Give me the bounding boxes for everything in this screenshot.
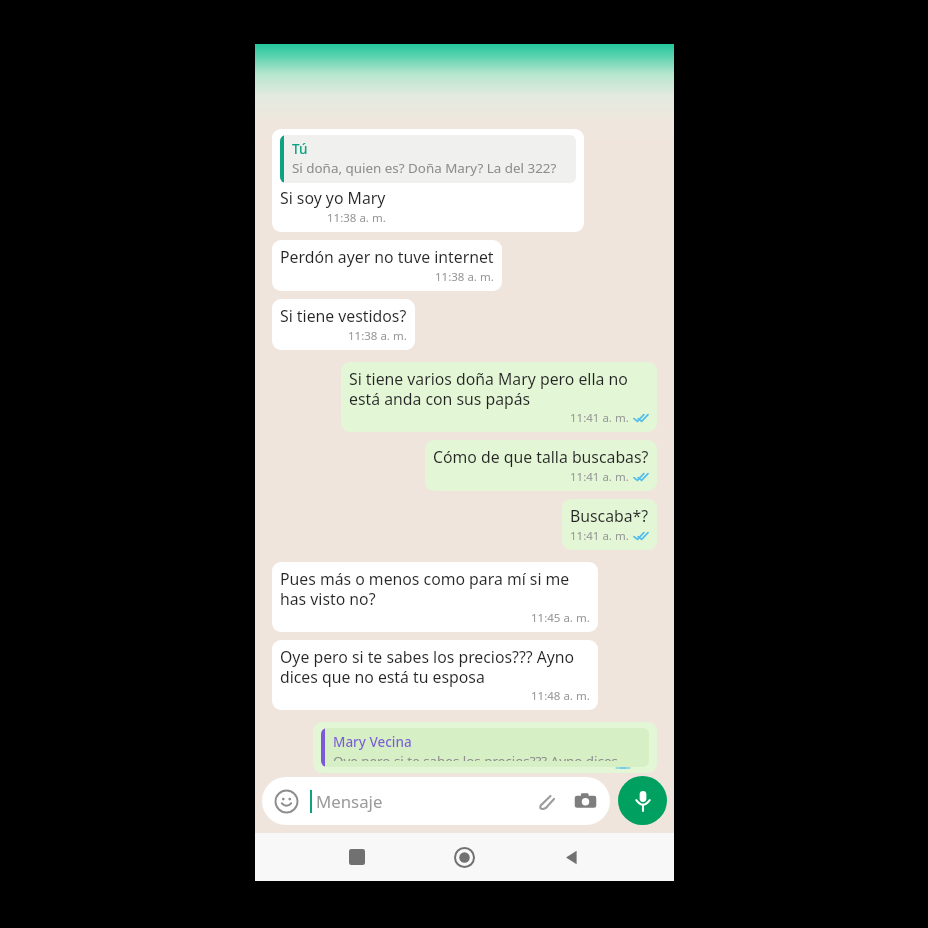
staticText: Pues más o menos como para mí si me has … (280, 568, 590, 609)
button[interactable]: Si tiene vestidos? (272, 299, 415, 350)
staticText: Cómo de que talla buscabas? (433, 446, 649, 468)
staticText: Si soy yo Mary (280, 187, 386, 209)
staticText: 11:41 a. m. (570, 410, 629, 426)
button[interactable]: Back (547, 833, 595, 881)
button[interactable]: Perdón ayer no tuve internet (272, 240, 502, 291)
staticText: Si doña, quien es? Doña Mary? La del 322… (292, 159, 557, 177)
staticText: Oye pero si te sabes los precios??? Ayno… (333, 752, 641, 761)
button[interactable]: Home (440, 833, 488, 881)
staticText: 11:38 a. m. (348, 328, 407, 344)
button[interactable]: Mary Vecina (313, 722, 657, 773)
button[interactable]: Oye pero si te sabes los precios??? Ayno… (272, 640, 598, 710)
button[interactable]: Buscaba*? (562, 499, 657, 550)
staticText: Tú (292, 140, 308, 158)
button[interactable]: Emoji (262, 777, 610, 825)
staticText: 11:38 a. m. (327, 210, 386, 226)
button[interactable]: Camera (573, 789, 598, 814)
staticText: Mensaje (316, 790, 383, 813)
button[interactable]: Cómo de que talla buscabas? (425, 440, 657, 491)
button[interactable]: Tú (272, 129, 584, 232)
staticText: 11:41 a. m. (570, 528, 629, 544)
staticText: 11:45 a. m. (531, 610, 590, 626)
staticText: Oye pero si te sabes los precios??? Ayno… (280, 646, 590, 687)
button[interactable]: Si tiene varios doña Mary pero ella no e… (341, 362, 657, 432)
staticText: Perdón ayer no tuve internet (280, 246, 494, 268)
staticText: Si tiene varios doña Mary pero ella no e… (349, 368, 649, 409)
button[interactable]: Recents (333, 833, 381, 881)
button[interactable]: Pues más o menos como para mí si me has … (272, 562, 598, 632)
staticText: Buscaba*? (570, 505, 649, 527)
button[interactable]: Voice message (618, 776, 667, 825)
staticText: 11:38 a. m. (435, 269, 494, 285)
button[interactable]: Emoji (274, 789, 299, 814)
staticText: Si tiene vestidos? (280, 305, 407, 327)
staticText: Mary Vecina (333, 733, 412, 751)
staticText: 11:48 a. m. (531, 688, 590, 704)
button[interactable]: Attach (533, 789, 558, 814)
staticText: 11:41 a. m. (570, 469, 629, 485)
